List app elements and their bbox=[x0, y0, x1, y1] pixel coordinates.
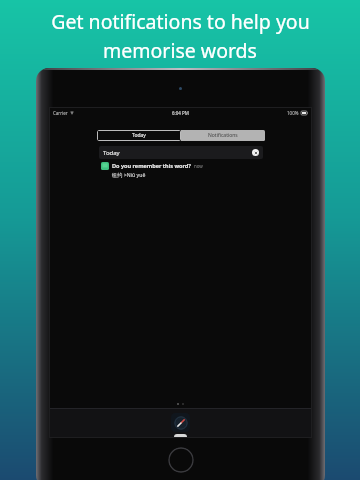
button[interactable]: Safari bbox=[171, 413, 190, 432]
staticText: 纽约 >Niǔ yuē bbox=[112, 171, 146, 178]
staticText: Today bbox=[103, 149, 120, 157]
staticText: Do you remember this word? bbox=[112, 162, 191, 170]
staticText: Carrier bbox=[53, 110, 68, 116]
button[interactable]: Do you remember this word? bbox=[99, 161, 263, 179]
button[interactable]: Home bbox=[168, 447, 194, 473]
button[interactable]: Today bbox=[97, 130, 181, 141]
staticText: 100% bbox=[287, 110, 299, 116]
staticText: Get notifications to help you bbox=[51, 8, 310, 35]
button[interactable]: Notifications bbox=[181, 130, 265, 141]
staticText: now bbox=[194, 163, 203, 169]
button[interactable]: Clear notifications bbox=[252, 149, 259, 156]
staticText: Notifications bbox=[208, 132, 238, 139]
staticText: Today bbox=[132, 132, 146, 139]
staticText: memorise words bbox=[103, 37, 257, 64]
staticText: 6:04 PM bbox=[172, 110, 189, 116]
button[interactable]: Today bbox=[99, 146, 263, 159]
